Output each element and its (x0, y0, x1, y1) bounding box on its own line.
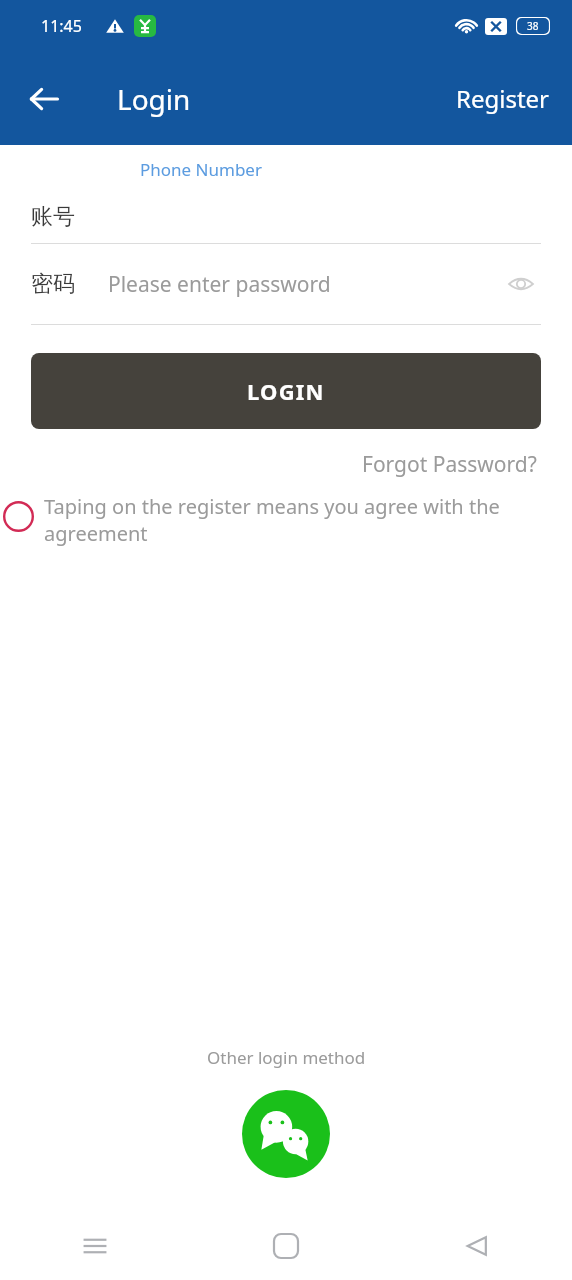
button[interactable]: Home (190, 1212, 381, 1280)
staticText: Forgot Password? (362, 450, 537, 479)
button[interactable]: 账号 (31, 190, 541, 243)
staticText: Login (117, 80, 191, 118)
staticText: 11:45 (41, 15, 82, 37)
staticText: 密码 (31, 270, 75, 298)
button[interactable]: Taping on the register means you agree w… (0, 493, 572, 547)
staticText: Taping on the register means you agree w… (44, 493, 532, 547)
button[interactable]: WeChat login (242, 1090, 330, 1178)
button[interactable]: Back (18, 73, 70, 125)
button[interactable]: 密码 (31, 244, 541, 324)
button[interactable]: Recent apps (0, 1212, 190, 1280)
staticText: Register (456, 82, 550, 115)
button[interactable]: LOGIN (31, 353, 541, 429)
button[interactable]: Forgot Password? (358, 446, 541, 483)
button[interactable]: Back (381, 1212, 572, 1280)
button[interactable]: Show password (501, 264, 541, 304)
staticText: 账号 (31, 203, 75, 231)
staticText: Phone Number (140, 158, 262, 181)
staticText: Please enter password (108, 270, 501, 299)
staticText: Other login method (207, 1046, 366, 1069)
button[interactable]: Register (434, 68, 572, 129)
staticText: LOGIN (247, 376, 325, 406)
staticText: 38 (527, 19, 539, 33)
